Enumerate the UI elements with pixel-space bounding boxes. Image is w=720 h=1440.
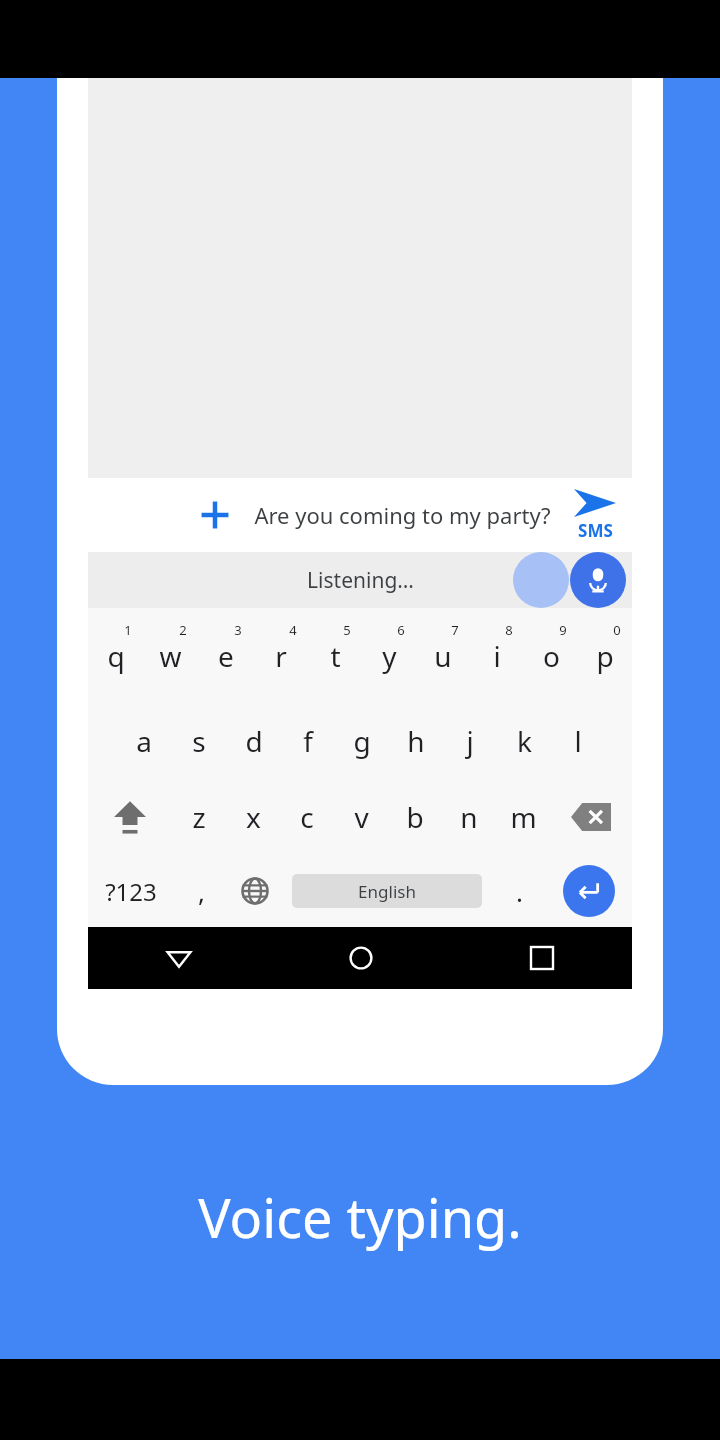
button[interactable]: j (443, 703, 497, 779)
staticText: English (358, 880, 416, 903)
button[interactable]: i (470, 618, 524, 694)
button[interactable]: l (551, 703, 605, 779)
button[interactable]: p (578, 618, 632, 694)
staticText: q (107, 637, 125, 675)
button[interactable]: k (497, 703, 551, 779)
staticText: u (434, 637, 452, 675)
button[interactable]: Home (270, 927, 451, 989)
staticText: v (354, 798, 369, 836)
button[interactable]: q (88, 618, 143, 694)
staticText: . (516, 874, 523, 909)
button[interactable]: Backspace (550, 779, 632, 855)
button[interactable]: w (143, 618, 198, 694)
button[interactable]: Recents (451, 927, 632, 989)
staticText: s (192, 722, 206, 760)
staticText: h (407, 722, 425, 760)
button[interactable]: Shift (88, 779, 171, 855)
staticText: e (218, 637, 234, 675)
staticText: w (159, 637, 182, 675)
button[interactable]: . (492, 855, 546, 927)
staticText: a (136, 722, 152, 760)
staticText: 2 (179, 621, 187, 639)
staticText: j (466, 722, 474, 760)
staticText: Listening… (307, 566, 414, 595)
button[interactable]: s (171, 703, 226, 779)
staticText: 6 (397, 621, 405, 639)
staticText: p (596, 637, 614, 675)
staticText: z (192, 798, 206, 836)
button[interactable]: Enter (546, 855, 632, 927)
staticText: Voice typing. (198, 1180, 522, 1254)
button[interactable]: English (292, 874, 482, 908)
button[interactable]: Back (88, 927, 270, 989)
staticText: 4 (289, 621, 297, 639)
button[interactable]: Add (189, 489, 241, 541)
staticText: Are you coming to my party? (254, 500, 551, 530)
button[interactable]: SMS (568, 489, 622, 542)
staticText: 0 (613, 621, 621, 639)
button[interactable]: v (334, 779, 388, 855)
staticText: k (517, 722, 532, 760)
staticText: y (382, 637, 397, 675)
button[interactable]: a (116, 703, 171, 779)
button[interactable]: n (442, 779, 496, 855)
staticText: c (300, 798, 314, 836)
staticText: m (510, 798, 537, 836)
staticText: n (460, 798, 478, 836)
button[interactable]: ?123 (88, 855, 174, 927)
button[interactable]: g (335, 703, 389, 779)
staticText: SMS (578, 519, 613, 542)
button[interactable]: m (496, 779, 550, 855)
button[interactable]: t (308, 618, 362, 694)
staticText: 3 (234, 621, 242, 639)
staticText: x (246, 798, 261, 836)
staticText: o (543, 637, 560, 675)
staticText: i (493, 637, 501, 675)
button[interactable]: b (388, 779, 442, 855)
button[interactable]: e (198, 618, 253, 694)
button[interactable]: Voice input (570, 552, 626, 608)
button[interactable]: x (226, 779, 280, 855)
staticText: 1 (124, 621, 132, 639)
button[interactable]: y (362, 618, 416, 694)
button[interactable]: , (174, 855, 228, 927)
staticText: ?123 (105, 875, 157, 908)
staticText: 7 (451, 621, 459, 639)
button[interactable]: d (226, 703, 281, 779)
button[interactable]: c (280, 779, 334, 855)
staticText: f (303, 722, 313, 760)
staticText: b (406, 798, 424, 836)
button[interactable]: Change language (228, 855, 282, 927)
staticText: 8 (505, 621, 513, 639)
staticText: 9 (559, 621, 567, 639)
button[interactable]: o (524, 618, 578, 694)
button[interactable]: h (389, 703, 443, 779)
staticText: r (275, 637, 287, 675)
staticText: l (574, 722, 582, 760)
staticText: d (245, 722, 263, 760)
staticText: , (198, 874, 205, 909)
button[interactable]: z (171, 779, 226, 855)
staticText: g (353, 722, 371, 760)
button[interactable]: u (416, 618, 470, 694)
button[interactable]: r (253, 618, 308, 694)
staticText: 5 (343, 621, 351, 639)
button[interactable]: f (281, 703, 335, 779)
staticText: t (330, 637, 341, 675)
